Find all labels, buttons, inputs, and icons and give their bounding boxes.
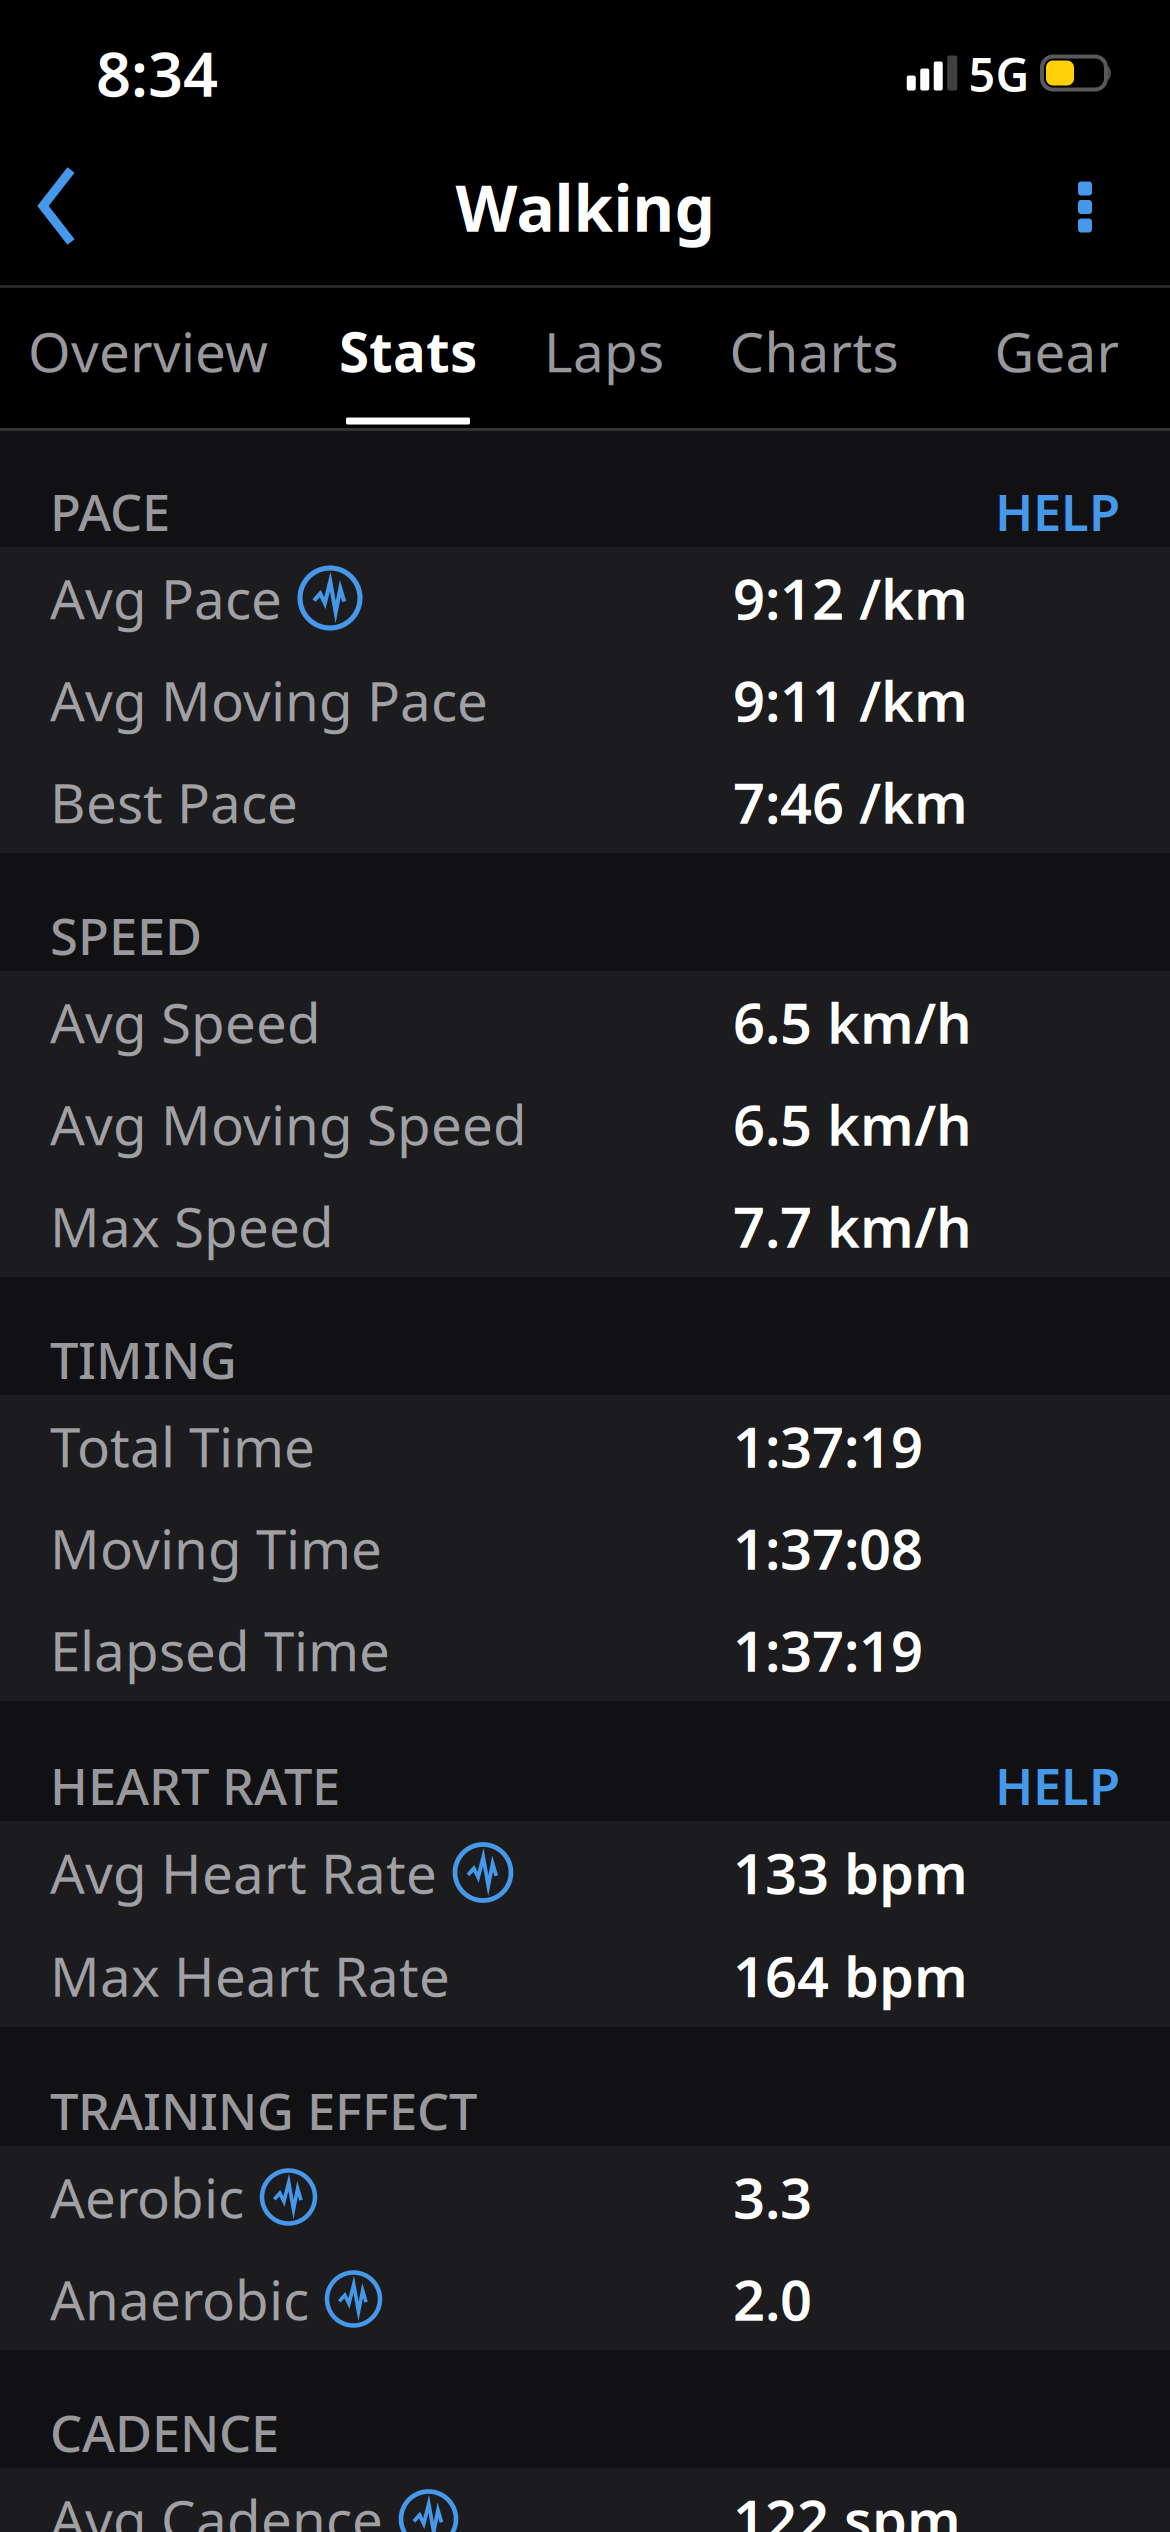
staticText: Laps bbox=[544, 315, 664, 387]
staticText: Avg Moving Pace bbox=[50, 664, 488, 736]
staticText: PACE bbox=[50, 478, 170, 545]
staticText: 9:12 /km bbox=[733, 561, 968, 635]
staticText: 9:11 /km bbox=[733, 663, 968, 737]
staticText: Avg Moving Speed bbox=[50, 1088, 527, 1160]
staticText: SPEED bbox=[50, 902, 202, 969]
staticText: 164 bpm bbox=[733, 1938, 968, 2013]
button[interactable]: More options bbox=[1048, 165, 1122, 248]
button[interactable]: Avg Moving Pace bbox=[0, 649, 1170, 751]
staticText: 7.7 km/h bbox=[733, 1189, 972, 1263]
staticText: Avg Cadence bbox=[50, 2483, 383, 2532]
staticText: Best Pace bbox=[50, 766, 298, 838]
staticText: Walking bbox=[455, 164, 714, 249]
button[interactable]: HELP bbox=[995, 1752, 1120, 1819]
staticText: HELP bbox=[995, 1752, 1120, 1819]
staticText: 6.5 km/h bbox=[733, 1087, 972, 1161]
staticText: 8:34 bbox=[96, 32, 218, 114]
button[interactable]: Avg Heart Rate bbox=[0, 1821, 1170, 1924]
button[interactable]: Back bbox=[15, 150, 99, 262]
button[interactable]: Charts bbox=[715, 291, 912, 411]
button[interactable]: Avg Cadence bbox=[0, 2468, 1170, 2532]
button[interactable]: Aerobic bbox=[0, 2146, 1170, 2248]
button[interactable]: Elapsed Time bbox=[0, 1599, 1170, 1701]
staticText: 1:37:19 bbox=[733, 1409, 923, 1483]
staticText: 6.5 km/h bbox=[733, 985, 972, 1059]
button[interactable]: Anaerobic bbox=[0, 2248, 1170, 2350]
button[interactable]: Avg Pace bbox=[0, 547, 1170, 649]
staticText: CADENCE bbox=[50, 2399, 279, 2466]
button[interactable]: Total Time bbox=[0, 1395, 1170, 1497]
staticText: Anaerobic bbox=[50, 2263, 309, 2335]
staticText: 122 spm bbox=[733, 2482, 961, 2532]
staticText: 7:46 /km bbox=[733, 765, 968, 839]
button[interactable]: Stats bbox=[325, 291, 491, 411]
button[interactable]: Gear bbox=[980, 291, 1133, 411]
staticText: 2.0 bbox=[733, 2262, 812, 2336]
staticText: TIMING bbox=[50, 1326, 237, 1393]
staticText: Avg Heart Rate bbox=[50, 1836, 437, 1909]
staticText: Aerobic bbox=[50, 2161, 244, 2233]
staticText: Max Speed bbox=[50, 1190, 334, 1262]
staticText: 133 bpm bbox=[733, 1835, 968, 1910]
staticText: 3.3 bbox=[733, 2160, 812, 2234]
staticText: Overview bbox=[28, 315, 268, 387]
staticText: HEART RATE bbox=[50, 1752, 340, 1819]
button[interactable]: HELP bbox=[995, 478, 1120, 545]
staticText: Gear bbox=[994, 315, 1119, 387]
button[interactable]: Max Speed bbox=[0, 1175, 1170, 1277]
staticText: TRAINING EFFECT bbox=[50, 2077, 477, 2144]
staticText: Total Time bbox=[50, 1410, 315, 1482]
staticText: 1:37:19 bbox=[733, 1613, 923, 1687]
button[interactable]: Overview bbox=[14, 291, 282, 411]
button[interactable]: Laps bbox=[530, 291, 678, 411]
button[interactable]: Moving Time bbox=[0, 1497, 1170, 1599]
staticText: 5G bbox=[968, 43, 1029, 105]
staticText: Avg Pace bbox=[50, 562, 282, 634]
button[interactable]: Max Heart Rate bbox=[0, 1924, 1170, 2027]
staticText: 1:37:08 bbox=[733, 1511, 923, 1585]
button[interactable]: Avg Moving Speed bbox=[0, 1073, 1170, 1175]
staticText: Stats bbox=[339, 315, 477, 387]
staticText: HELP bbox=[995, 478, 1120, 545]
button[interactable]: Avg Speed bbox=[0, 971, 1170, 1073]
staticText: Max Heart Rate bbox=[50, 1939, 450, 2012]
staticText: Charts bbox=[729, 315, 898, 387]
staticText: Moving Time bbox=[50, 1512, 382, 1584]
staticText: Avg Speed bbox=[50, 986, 321, 1058]
staticText: Elapsed Time bbox=[50, 1614, 390, 1686]
button[interactable]: Best Pace bbox=[0, 751, 1170, 853]
